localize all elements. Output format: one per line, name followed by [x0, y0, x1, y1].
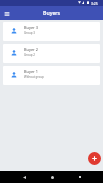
button[interactable]: Home: [46, 171, 58, 183]
staticText: Buyer 2: [24, 47, 38, 52]
staticText: Buyer 1: [24, 69, 38, 74]
button[interactable]: Open navigation menu: [1, 8, 12, 19]
staticText: Group 2: [24, 53, 35, 57]
staticText: 3:25: [91, 1, 98, 6]
staticText: Group 3: [24, 31, 35, 35]
staticText: Buyer 3: [24, 25, 38, 30]
staticText: Without group: [24, 75, 44, 79]
button[interactable]: Buyer 3: [3, 22, 100, 41]
button[interactable]: Buyer 2: [3, 44, 100, 63]
button[interactable]: Recent apps: [74, 171, 86, 183]
staticText: Buyers: [43, 9, 61, 16]
button[interactable]: Back: [18, 171, 30, 183]
button[interactable]: Add buyer: [88, 152, 101, 165]
button[interactable]: Buyer 1: [3, 66, 100, 85]
